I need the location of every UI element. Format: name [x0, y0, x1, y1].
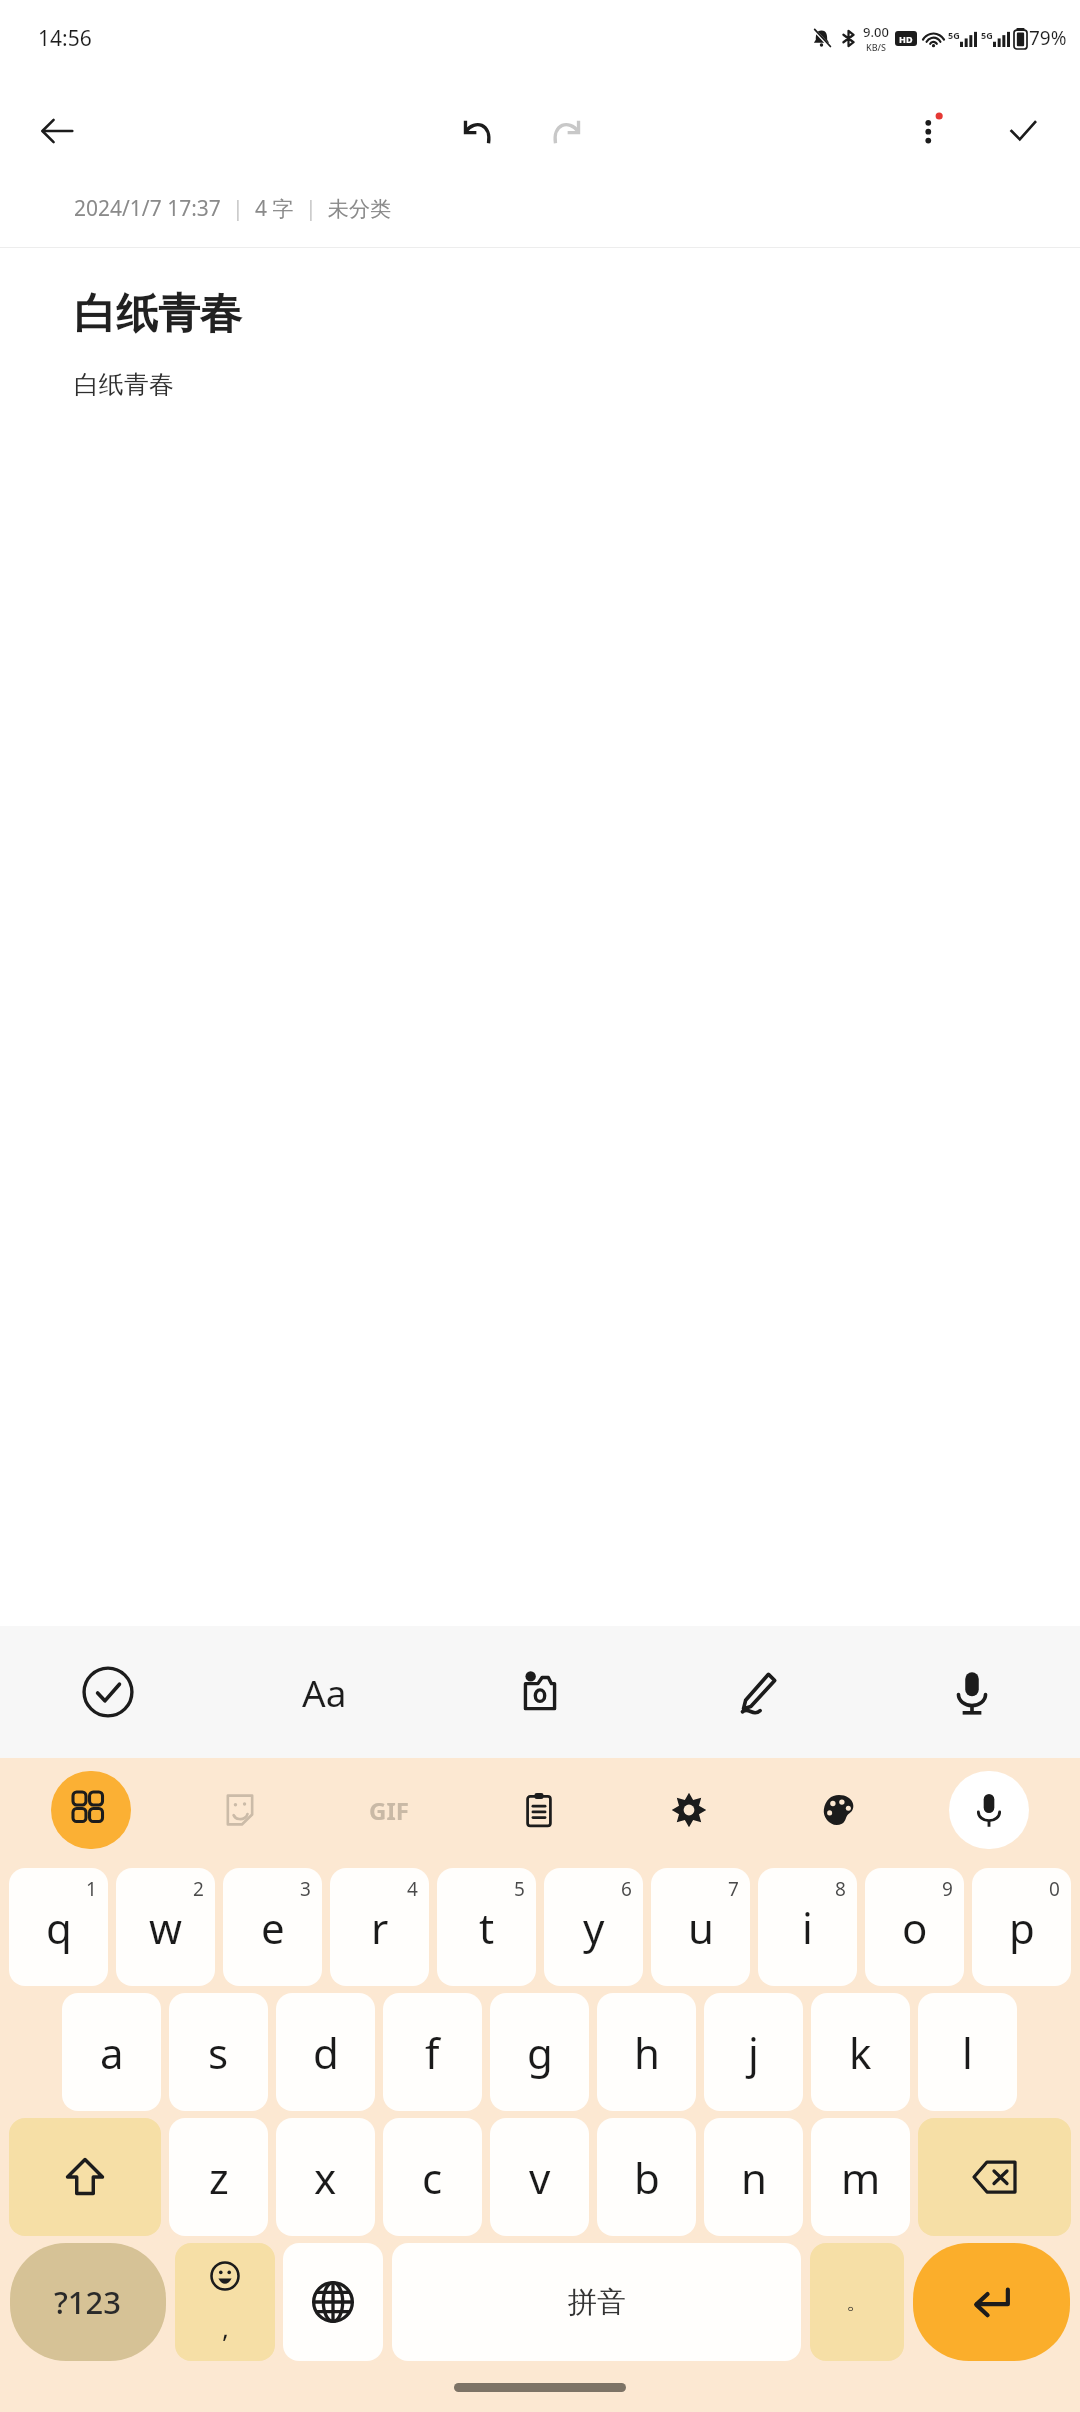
button[interactable]: Shift	[9, 2118, 161, 2236]
button[interactable]: q	[9, 1868, 108, 1986]
staticText: u	[688, 1899, 714, 1956]
staticText: q	[46, 1899, 72, 1956]
button[interactable]: Checklist	[0, 1626, 216, 1758]
staticText: z	[209, 2149, 229, 2206]
staticText: 0	[1049, 1876, 1060, 1902]
button[interactable]: Text format	[216, 1626, 432, 1758]
button[interactable]: u	[651, 1868, 750, 1986]
button[interactable]: Clipboard	[500, 1771, 578, 1849]
staticText: 2	[193, 1876, 204, 1902]
button[interactable]: Back	[26, 100, 88, 162]
staticText: 2024/1/7 17:37	[74, 194, 221, 223]
staticText: f	[425, 2024, 440, 2081]
button[interactable]: o	[865, 1868, 964, 1986]
staticText: c	[422, 2149, 443, 2206]
button[interactable]: Voice input	[949, 1771, 1029, 1849]
staticText: 4 字	[255, 194, 294, 223]
button[interactable]: Voice	[864, 1626, 1080, 1758]
staticText: i	[802, 1899, 813, 1956]
staticText: 14:56	[38, 24, 92, 53]
button[interactable]: Stickers	[201, 1771, 279, 1849]
staticText: p	[1009, 1899, 1035, 1956]
button[interactable]: j	[704, 1993, 803, 2111]
button[interactable]: Undo	[446, 100, 508, 162]
staticText: |	[221, 194, 255, 223]
staticText: n	[741, 2149, 767, 2206]
staticText: a	[100, 2024, 124, 2081]
button[interactable]: Theme	[800, 1771, 878, 1849]
button[interactable]: GIF	[350, 1771, 428, 1849]
button[interactable]: e	[223, 1868, 322, 1986]
button[interactable]: Camera	[432, 1626, 648, 1758]
button[interactable]: z	[169, 2118, 268, 2236]
button[interactable]: l	[918, 1993, 1017, 2111]
staticText: 8	[835, 1876, 846, 1902]
button[interactable]: Draw	[648, 1626, 864, 1758]
staticText: 1	[86, 1876, 97, 1902]
staticText: ,	[222, 2310, 229, 2345]
staticText: ?123	[54, 2281, 122, 2323]
staticText: KB/S	[866, 41, 886, 53]
staticText: 。	[846, 2288, 868, 2316]
button[interactable]: Settings	[650, 1771, 728, 1849]
staticText: v	[529, 2149, 551, 2206]
staticText: Aa	[302, 1667, 347, 1717]
button[interactable]: k	[811, 1993, 910, 2111]
staticText: d	[313, 2024, 339, 2081]
staticText: o	[902, 1899, 928, 1956]
staticText: j	[748, 2024, 759, 2081]
staticText: x	[314, 2149, 337, 2206]
staticText: 79%	[1029, 25, 1067, 51]
button[interactable]: v	[490, 2118, 589, 2236]
staticText: GIF	[369, 1794, 409, 1827]
button[interactable]: w	[116, 1868, 215, 1986]
staticText: b	[634, 2149, 660, 2206]
staticText: 6	[621, 1876, 632, 1902]
staticText: l	[962, 2024, 973, 2081]
button[interactable]: c	[383, 2118, 482, 2236]
staticText: g	[527, 2024, 553, 2081]
button[interactable]: h	[597, 1993, 696, 2111]
staticText: m	[841, 2149, 881, 2206]
button[interactable]: Save	[992, 100, 1054, 162]
button[interactable]: a	[62, 1993, 161, 2111]
staticText: k	[849, 2024, 872, 2081]
staticText: h	[634, 2024, 660, 2081]
button[interactable]: m	[811, 2118, 910, 2236]
button[interactable]: 拼音	[392, 2243, 801, 2361]
staticText: 拼音	[568, 2284, 626, 2321]
button[interactable]: Enter	[913, 2243, 1070, 2361]
button[interactable]: Redo	[536, 100, 598, 162]
staticText: 5	[514, 1876, 525, 1902]
button[interactable]: Change language	[283, 2243, 383, 2361]
staticText: 未分类	[328, 196, 391, 222]
staticText: e	[261, 1899, 285, 1956]
staticText: r	[371, 1899, 389, 1956]
button[interactable]: Backspace	[918, 2118, 1071, 2236]
button[interactable]: t	[437, 1868, 536, 1986]
button[interactable]: f	[383, 1993, 482, 2111]
button[interactable]: r	[330, 1868, 429, 1986]
staticText: 4	[407, 1876, 418, 1902]
button[interactable]: Keyboard modes	[51, 1771, 131, 1849]
button[interactable]: Emoji and comma	[175, 2243, 275, 2361]
staticText: 3	[300, 1876, 311, 1902]
button[interactable]: y	[544, 1868, 643, 1986]
button[interactable]: 。	[810, 2243, 904, 2361]
staticText: 白纸青春	[74, 369, 174, 400]
staticText: y	[583, 1899, 605, 1956]
staticText: 5G	[981, 29, 993, 41]
button[interactable]: ?123	[10, 2243, 166, 2361]
button[interactable]: More options	[900, 100, 962, 162]
button[interactable]: n	[704, 2118, 803, 2236]
staticText: s	[208, 2024, 229, 2081]
button[interactable]: g	[490, 1993, 589, 2111]
staticText: 9.00	[863, 23, 889, 41]
button[interactable]: d	[276, 1993, 375, 2111]
button[interactable]: x	[276, 2118, 375, 2236]
button[interactable]: p	[972, 1868, 1071, 1986]
button[interactable]: b	[597, 2118, 696, 2236]
button[interactable]: s	[169, 1993, 268, 2111]
button[interactable]: i	[758, 1868, 857, 1986]
staticText: |	[294, 194, 328, 223]
